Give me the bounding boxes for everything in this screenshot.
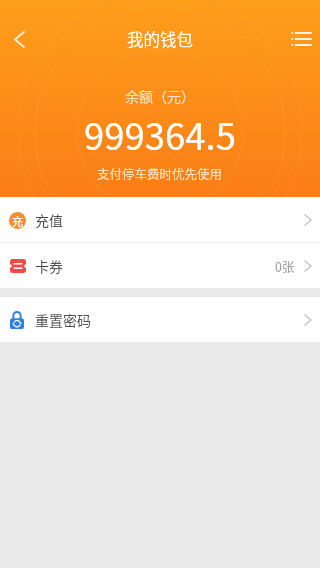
button[interactable]: 充 bbox=[0, 197, 320, 242]
staticText: 余额（元） bbox=[125, 86, 195, 106]
button[interactable]: 重置密码 bbox=[0, 297, 320, 342]
staticText: 0张 bbox=[275, 257, 295, 275]
button[interactable]: Menu bbox=[282, 20, 320, 58]
staticText: 支付停车费时优先使用 bbox=[97, 164, 223, 182]
staticText: 我的钱包 bbox=[127, 27, 193, 51]
staticText: 充 bbox=[12, 213, 23, 229]
staticText: 卡券 bbox=[35, 256, 63, 276]
staticText: 重置密码 bbox=[35, 310, 91, 330]
staticText: 999364.5 bbox=[84, 108, 236, 161]
button[interactable]: 卡券 bbox=[0, 243, 320, 288]
staticText: 充值 bbox=[35, 210, 63, 230]
button[interactable]: Back bbox=[0, 20, 38, 58]
